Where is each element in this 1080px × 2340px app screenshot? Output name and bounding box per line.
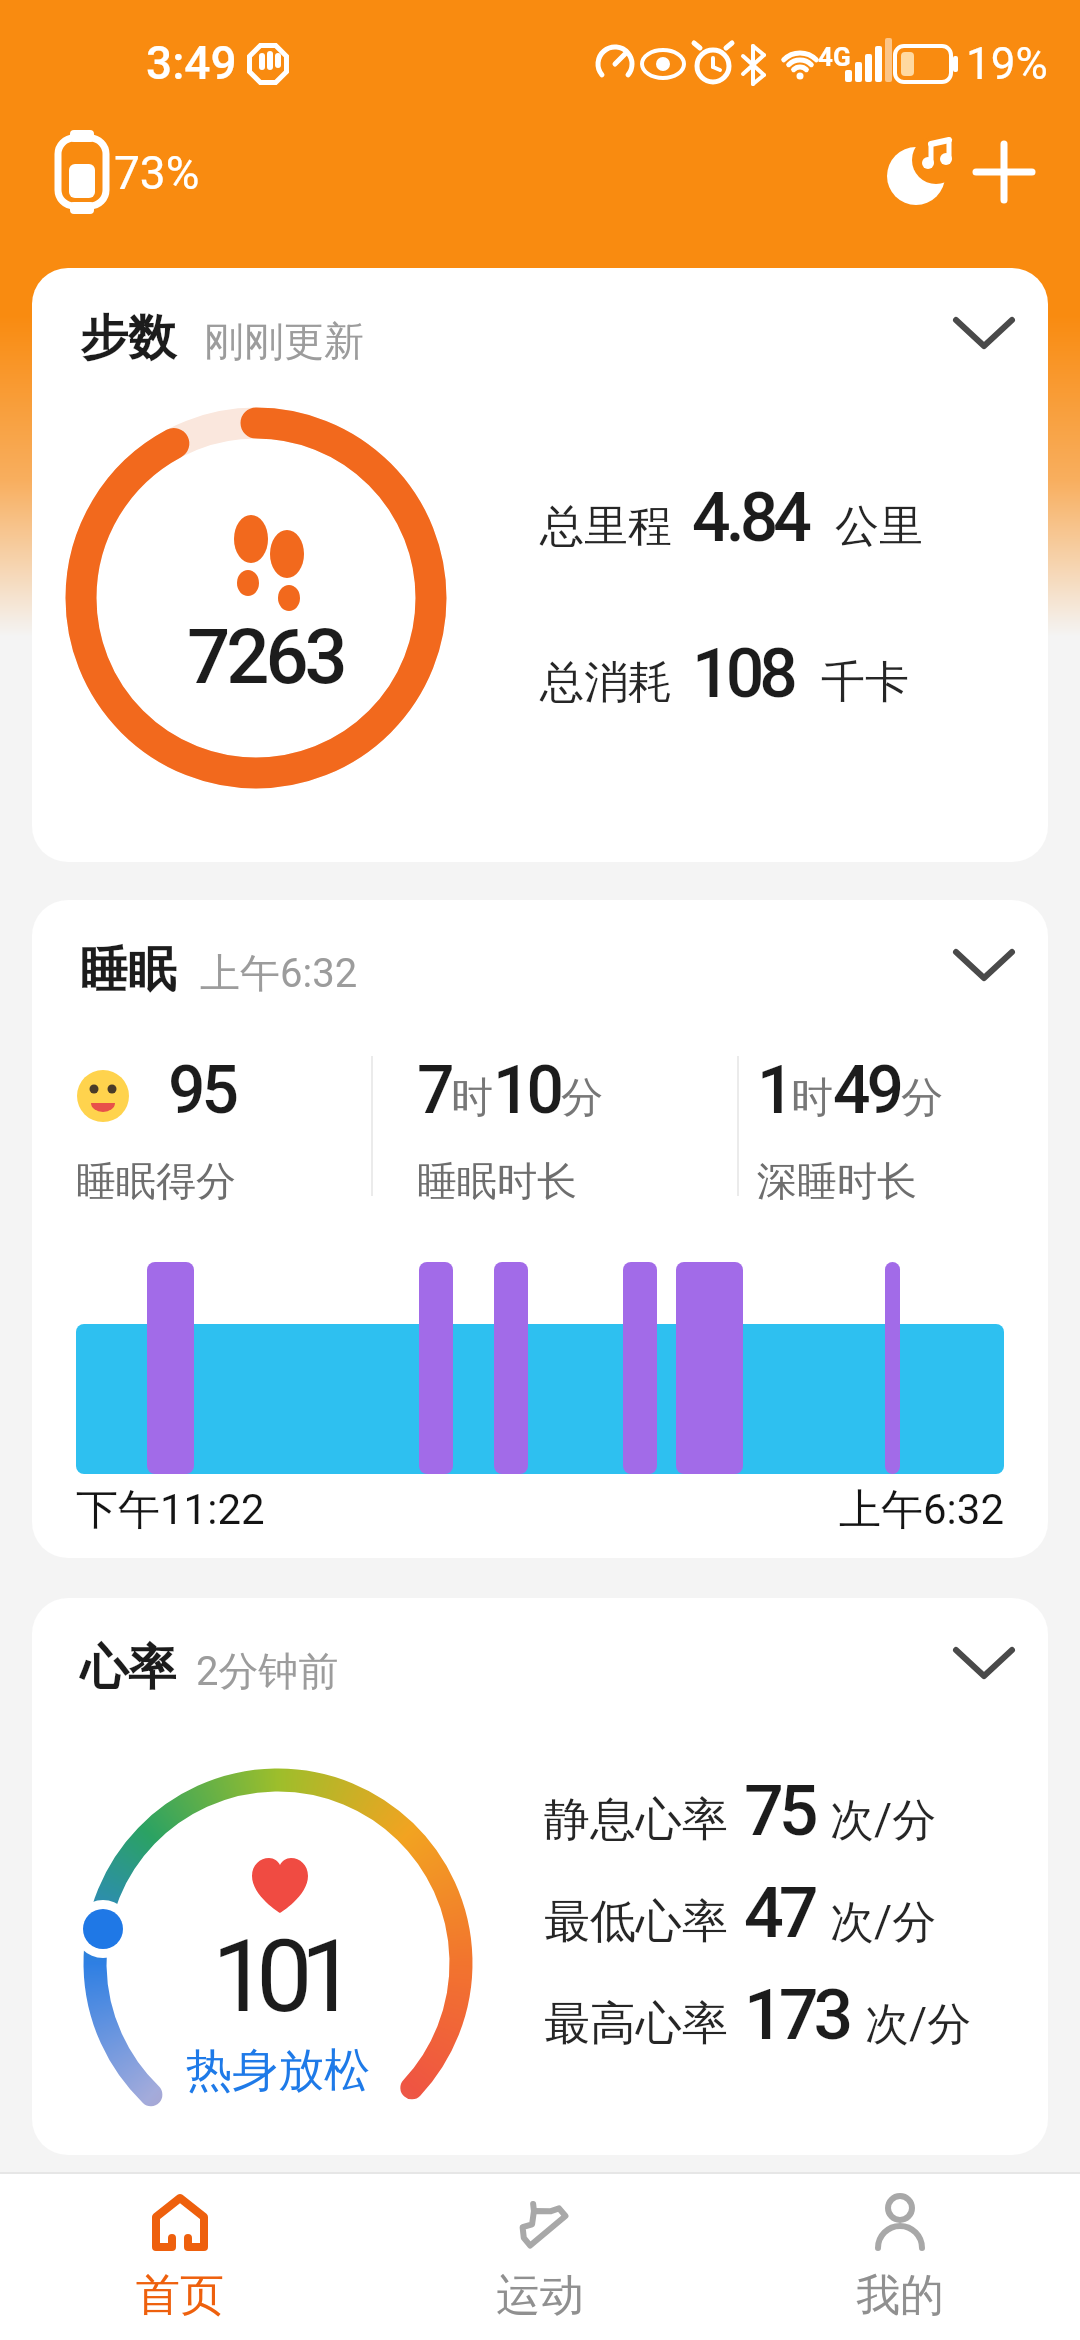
staticText: 首页 (136, 2268, 224, 2323)
staticText: 总消耗 (540, 655, 672, 710)
staticText: 下午11:22 (76, 1484, 265, 1537)
staticText: 总里程 (540, 499, 672, 554)
staticText: 睡眠时长 (417, 1156, 577, 1206)
staticText: 运动 (496, 2268, 584, 2323)
staticText: 最高心率 (544, 1995, 728, 2053)
button[interactable]: 首页 (90, 2180, 270, 2332)
staticText: 3:49 (146, 36, 237, 90)
staticText: 2分钟前 (196, 1646, 339, 1696)
staticText: 深睡时长 (757, 1156, 917, 1206)
staticText: 108 (692, 634, 793, 714)
staticText: 步数 (80, 308, 176, 368)
staticText: 101 (212, 1918, 345, 2035)
staticText: 时 (451, 1072, 493, 1125)
staticText: 分 (901, 1072, 943, 1125)
staticText: 上午6:32 (839, 1484, 1004, 1537)
staticText: 次/分 (830, 1793, 937, 1848)
button[interactable]: 步数 (32, 268, 1048, 862)
staticText: 75 (744, 1770, 814, 1852)
button[interactable] (878, 130, 962, 214)
staticText: 47 (744, 1872, 814, 1954)
staticText: 分 (561, 1072, 603, 1125)
staticText: 95 (168, 1052, 236, 1129)
button[interactable]: 睡眠 (32, 900, 1048, 1558)
staticText: 次/分 (865, 1997, 972, 2052)
staticText: 热身放松 (186, 2042, 370, 2100)
staticText: 19% (966, 38, 1048, 90)
staticText: 睡眠得分 (76, 1156, 236, 1206)
button[interactable]: 73% (48, 128, 198, 218)
staticText: 4.84 (692, 478, 807, 558)
staticText: 1 (757, 1052, 791, 1129)
staticText: 73% (114, 146, 200, 200)
button[interactable]: 运动 (450, 2180, 630, 2332)
staticText: 刚刚更新 (204, 316, 364, 366)
staticText: 最低心率 (544, 1893, 728, 1951)
staticText: 我的 (856, 2268, 944, 2323)
button[interactable] (964, 132, 1044, 212)
staticText: 心率 (80, 1638, 176, 1698)
staticText: 173 (744, 1974, 849, 2056)
staticText: 4G (818, 42, 851, 72)
staticText: 上午6:32 (200, 948, 358, 998)
staticText: 49 (833, 1052, 901, 1129)
staticText: 时 (791, 1072, 833, 1125)
button[interactable]: 心率 (32, 1598, 1048, 2155)
staticText: 次/分 (830, 1895, 937, 1950)
staticText: 10 (493, 1052, 561, 1129)
staticText: 静息心率 (544, 1791, 728, 1849)
staticText: 7 (417, 1052, 451, 1129)
button[interactable]: 我的 (810, 2180, 990, 2332)
staticText: 千卡 (821, 655, 909, 710)
staticText: 睡眠 (80, 940, 176, 1000)
staticText: 公里 (835, 499, 923, 554)
staticText: 7263 (187, 612, 344, 701)
